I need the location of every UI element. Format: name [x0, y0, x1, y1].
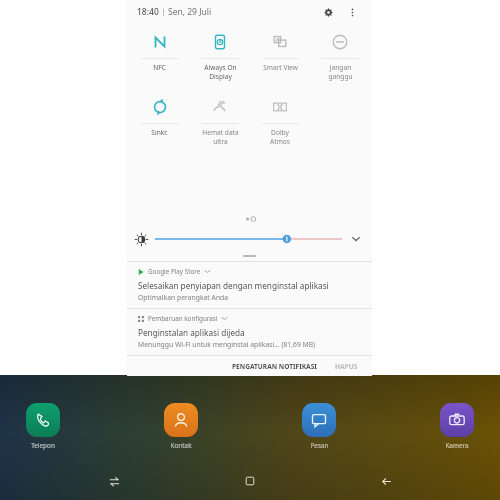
button[interactable]: Telepon [26, 403, 60, 450]
button[interactable]: Expand [349, 232, 363, 246]
staticText: Dolby Atmos [270, 128, 290, 146]
staticText: Sen, 29 Juli [168, 6, 212, 18]
button[interactable]: Hemat data ultra [190, 93, 250, 148]
staticText: Kamera [445, 441, 469, 450]
staticText: PENGATURAN NOTIFIKASI [232, 362, 317, 371]
button[interactable]: Sinkr. [129, 93, 190, 139]
staticText: Sinkr. [151, 128, 168, 137]
staticText: Selesaikan penyiapan dengan menginstal a… [138, 280, 329, 291]
button[interactable]: Pembaruan konfigurasi [127, 309, 372, 355]
staticText: Menunggu Wi-Fi untuk menginstal aplikasi… [138, 340, 316, 349]
button[interactable]: Recents [103, 470, 125, 492]
staticText: Kontak [170, 441, 192, 450]
button[interactable]: NFC [129, 28, 190, 74]
button[interactable]: Pesan [302, 403, 336, 450]
button[interactable]: Always On Display [190, 28, 250, 83]
button[interactable]: Dolby Atmos [250, 93, 310, 148]
staticText: Smart View [263, 63, 298, 72]
staticText: Penginstalan aplikasi dijeda [138, 327, 245, 338]
staticText: Pembaruan konfigurasi [148, 314, 218, 323]
staticText: Telepon [31, 441, 55, 450]
button[interactable]: More options [342, 2, 362, 22]
staticText: NFC [153, 63, 166, 72]
button[interactable]: Kamera [440, 403, 474, 450]
staticText: Always On Display [204, 63, 237, 81]
button[interactable]: HAPUS [331, 360, 362, 373]
button[interactable]: Kontak [164, 403, 198, 450]
button[interactable]: PENGATURAN NOTIFIKASI [228, 360, 321, 373]
staticText: Hemat data ultra [202, 128, 239, 146]
staticText: Optimalkan perangkat Anda [138, 293, 229, 302]
staticText: HAPUS [335, 362, 358, 371]
staticText: Google Play Store [148, 267, 201, 276]
staticText: Jangan ganggu [328, 63, 353, 81]
button[interactable]: Google Play Store [127, 262, 372, 308]
staticText: 18:40 [137, 6, 159, 18]
staticText: Pesan [310, 441, 329, 450]
button[interactable] [155, 231, 342, 247]
button[interactable]: Home [239, 470, 261, 492]
button[interactable]: Settings [318, 2, 338, 22]
button[interactable]: Back [375, 470, 397, 492]
button[interactable]: Smart View [250, 28, 310, 74]
button[interactable]: Jangan ganggu [310, 28, 370, 83]
